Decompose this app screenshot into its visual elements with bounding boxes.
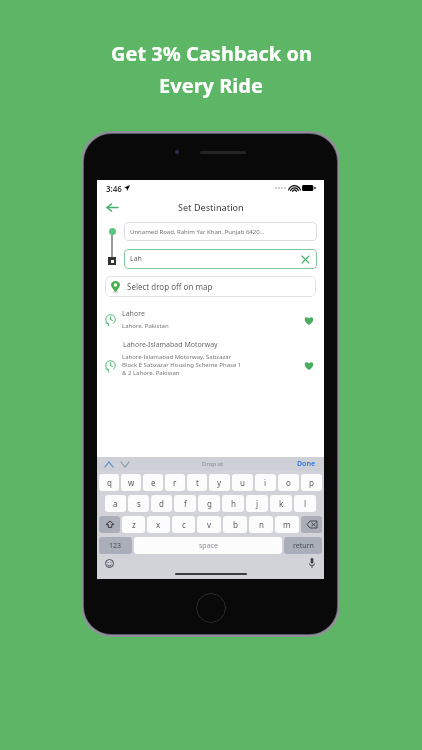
button[interactable]: Lah [124, 249, 317, 269]
staticText: Every Ride [159, 72, 263, 99]
staticText: p [309, 477, 314, 488]
button[interactable]: Backspace [301, 516, 322, 533]
button[interactable]: Back [102, 197, 122, 217]
button[interactable]: 123 [99, 537, 132, 554]
staticText: i [264, 477, 267, 488]
button[interactable]: m [275, 516, 299, 533]
button[interactable]: Lahore-Islamabad Motorway [97, 340, 324, 377]
staticText: Lah [130, 254, 300, 264]
staticText: a [113, 498, 118, 509]
button[interactable]: Favorite [302, 313, 316, 327]
staticText: q [107, 477, 112, 488]
button[interactable]: f [174, 495, 196, 512]
button[interactable]: g [198, 495, 220, 512]
button[interactable]: z [122, 516, 145, 533]
button[interactable]: Clear [300, 254, 311, 265]
button[interactable]: space [134, 537, 282, 554]
button[interactable]: i [255, 474, 276, 491]
staticText: s [137, 498, 141, 509]
button[interactable]: x [147, 516, 170, 533]
staticText: e [151, 477, 156, 488]
staticText: 123 [109, 541, 122, 551]
staticText: 3:46 [106, 183, 122, 194]
staticText: Set Destination [178, 201, 244, 213]
button[interactable]: Previous field [103, 458, 115, 470]
staticText: Lahore [122, 309, 145, 319]
staticText: m [283, 519, 291, 530]
staticText: Lahore, Pakistan [122, 322, 169, 330]
staticText: o [286, 477, 291, 488]
staticText: b [233, 519, 238, 530]
button[interactable]: v [197, 516, 221, 533]
button[interactable]: h [222, 495, 244, 512]
button[interactable]: r [165, 474, 185, 491]
button[interactable]: Unnamed Road, Rahim Yar Khan, Punjab 642… [124, 222, 317, 241]
staticText: r [173, 477, 177, 488]
button[interactable]: t [187, 474, 207, 491]
staticText: x [156, 519, 161, 530]
staticText: Lahore-Islamabad Motorway, Sabzazar Bloc… [122, 353, 242, 377]
staticText: w [128, 477, 135, 488]
staticText: y [217, 477, 222, 488]
staticText: Drop at [202, 460, 224, 468]
button[interactable]: Favorite [302, 358, 316, 372]
button[interactable]: q [99, 474, 119, 491]
staticText: u [240, 477, 245, 488]
button[interactable]: l [294, 495, 316, 512]
button[interactable]: Emoji [103, 557, 115, 569]
staticText: Select drop off on map [127, 281, 213, 292]
button[interactable]: b [223, 516, 247, 533]
button[interactable]: e [143, 474, 163, 491]
button[interactable]: c [172, 516, 195, 533]
staticText: Done [297, 459, 316, 469]
staticText: space [199, 541, 218, 551]
staticText: l [304, 498, 307, 509]
staticText: h [231, 498, 236, 509]
button[interactable]: s [128, 495, 149, 512]
button[interactable]: d [151, 495, 172, 512]
button[interactable]: Done [295, 459, 318, 469]
staticText: Unnamed Road, Rahim Yar Khan, Punjab 642… [130, 228, 265, 236]
staticText: z [132, 519, 136, 530]
staticText: v [207, 519, 212, 530]
button[interactable]: Dictation [306, 557, 318, 569]
button[interactable]: Select drop off on map [105, 276, 316, 297]
staticText: n [259, 519, 264, 530]
staticText: return [293, 541, 314, 551]
staticText: g [207, 498, 212, 509]
button[interactable]: w [121, 474, 141, 491]
button[interactable]: Home [196, 593, 226, 623]
staticText: f [184, 498, 187, 509]
staticText: j [256, 498, 259, 509]
button[interactable]: Lahore [97, 309, 324, 330]
button[interactable]: n [249, 516, 273, 533]
button[interactable]: Next field [119, 458, 131, 470]
button[interactable]: p [301, 474, 322, 491]
staticText: k [279, 498, 284, 509]
button[interactable]: k [270, 495, 292, 512]
button[interactable]: Shift [99, 516, 120, 533]
staticText: t [196, 477, 199, 488]
button[interactable]: o [278, 474, 299, 491]
staticText: c [182, 519, 186, 530]
staticText: Get 3% Cashback on [111, 40, 312, 67]
staticText: Lahore-Islamabad Motorway [123, 340, 218, 350]
button[interactable]: u [232, 474, 253, 491]
button[interactable]: y [209, 474, 230, 491]
button[interactable]: return [284, 537, 322, 554]
button[interactable]: a [105, 495, 126, 512]
staticText: d [159, 498, 164, 509]
button[interactable]: j [246, 495, 268, 512]
